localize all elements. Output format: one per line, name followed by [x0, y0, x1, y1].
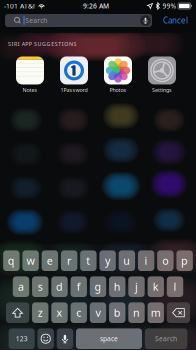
- button[interactable]: v: [90, 302, 106, 323]
- button[interactable]: r: [61, 250, 77, 271]
- staticText: g: [94, 280, 101, 294]
- button[interactable]: t: [80, 250, 97, 271]
- button[interactable]: Delete: [167, 302, 190, 323]
- staticText: m: [151, 306, 161, 320]
- staticText: k: [153, 280, 159, 294]
- button[interactable]: o: [157, 250, 174, 271]
- staticText: Search: [155, 334, 177, 343]
- staticText: 9:26 AM: [83, 2, 109, 10]
- staticText: q: [8, 254, 15, 268]
- staticText: y: [105, 254, 110, 268]
- button[interactable]: w: [22, 250, 39, 271]
- button[interactable]: 1Password: [52, 56, 96, 94]
- button[interactable]: Cancel: [163, 14, 188, 27]
- button[interactable]: z: [32, 302, 48, 323]
- button[interactable]: Emoji: [37, 328, 54, 349]
- button[interactable]: e: [42, 250, 58, 271]
- button[interactable]: g: [90, 276, 106, 297]
- button[interactable]: j: [128, 276, 145, 297]
- staticText: -101 AT&T: [4, 2, 36, 10]
- staticText: Cancel: [163, 15, 188, 26]
- button[interactable]: l: [167, 276, 183, 297]
- staticText: z: [38, 306, 43, 320]
- staticText: w: [27, 254, 35, 268]
- button[interactable]: Shift: [6, 302, 29, 323]
- staticText: e: [47, 254, 53, 268]
- button[interactable]: Search: [145, 328, 187, 349]
- staticText: b: [114, 306, 121, 320]
- staticText: t: [86, 254, 90, 268]
- button[interactable]: h: [109, 276, 125, 297]
- staticText: r: [67, 254, 71, 268]
- staticText: 123: [16, 334, 28, 343]
- staticText: f: [77, 280, 81, 294]
- button[interactable]: space: [76, 328, 142, 349]
- button[interactable]: Dictation: [57, 328, 73, 349]
- staticText: x: [56, 306, 62, 320]
- staticText: space: [100, 334, 118, 343]
- button[interactable]: n: [128, 302, 145, 323]
- staticText: h: [114, 280, 121, 294]
- button[interactable]: f: [70, 276, 87, 297]
- staticText: l: [173, 280, 176, 294]
- button[interactable]: y: [99, 250, 116, 271]
- staticText: SIRI APP SUGGESTIONS: [8, 40, 76, 48]
- button[interactable]: d: [51, 276, 68, 297]
- staticText: d: [56, 280, 63, 294]
- staticText: c: [76, 306, 81, 320]
- button[interactable]: 123: [9, 328, 35, 349]
- staticText: i: [145, 254, 148, 268]
- staticText: Search: [25, 16, 47, 25]
- button[interactable]: p: [176, 250, 193, 271]
- staticText: p: [181, 254, 188, 268]
- staticText: a: [18, 280, 24, 294]
- staticText: o: [162, 254, 168, 268]
- button[interactable]: q: [3, 250, 20, 271]
- button[interactable]: Photos: [96, 56, 140, 94]
- staticText: n: [133, 306, 140, 320]
- staticText: j: [135, 280, 138, 294]
- button[interactable]: a: [13, 276, 29, 297]
- button[interactable]: c: [70, 302, 87, 323]
- button[interactable]: Notes: [8, 56, 52, 94]
- button[interactable]: x: [51, 302, 68, 323]
- staticText: s: [38, 280, 43, 294]
- button[interactable]: i: [138, 250, 154, 271]
- staticText: 1Password: [60, 86, 87, 94]
- staticText: Photos: [109, 86, 126, 94]
- button[interactable]: b: [109, 302, 125, 323]
- button[interactable]: m: [148, 302, 164, 323]
- staticText: Notes: [22, 86, 37, 94]
- staticText: u: [123, 254, 130, 268]
- button[interactable]: s: [32, 276, 48, 297]
- button[interactable]: k: [147, 276, 164, 297]
- button[interactable]: Settings: [140, 56, 184, 94]
- staticText: Settings: [152, 86, 172, 94]
- staticText: v: [95, 306, 100, 320]
- button[interactable]: u: [119, 250, 135, 271]
- staticText: 99%: [162, 2, 176, 10]
